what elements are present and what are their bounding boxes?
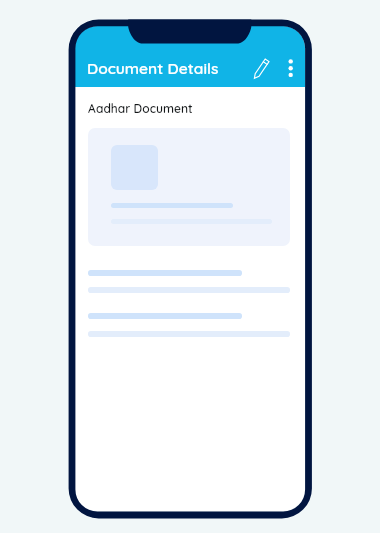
staticText: Aadhar Document <box>88 101 193 116</box>
button[interactable] <box>88 128 290 246</box>
button[interactable]: More options <box>279 55 305 81</box>
staticText: Document Details <box>87 58 219 77</box>
button[interactable]: Edit <box>245 51 273 79</box>
